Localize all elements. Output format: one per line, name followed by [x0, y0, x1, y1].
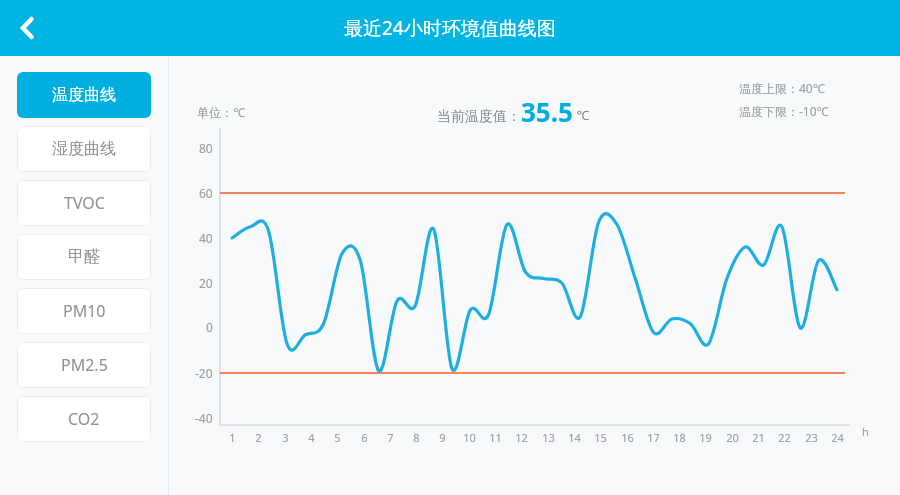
- staticText: 温度曲线: [52, 85, 116, 105]
- staticText: 12: [515, 430, 528, 445]
- staticText: 35.5: [521, 94, 573, 129]
- staticText: PM2.5: [61, 354, 108, 376]
- button[interactable]: TVOC: [17, 180, 151, 226]
- staticText: 最近24小时环境值曲线图: [344, 15, 556, 41]
- staticText: -20: [195, 365, 213, 381]
- staticText: 21: [752, 430, 765, 445]
- button[interactable]: PM10: [17, 288, 151, 334]
- button[interactable]: CO2: [17, 396, 151, 442]
- staticText: 5: [334, 430, 341, 445]
- staticText: 19: [699, 430, 712, 445]
- staticText: 20: [199, 275, 213, 291]
- staticText: 13: [542, 430, 555, 445]
- staticText: 10: [463, 430, 476, 445]
- staticText: CO2: [68, 408, 100, 430]
- staticText: 3: [282, 430, 289, 445]
- button[interactable]: PM2.5: [17, 342, 151, 388]
- staticText: 17: [647, 430, 660, 445]
- staticText: ℃: [573, 106, 590, 124]
- staticText: TVOC: [64, 192, 105, 214]
- staticText: 18: [673, 430, 686, 445]
- staticText: 9: [439, 430, 446, 445]
- staticText: 16: [621, 430, 634, 445]
- staticText: 23: [805, 430, 818, 445]
- staticText: 4: [308, 430, 315, 445]
- staticText: 14: [568, 430, 581, 445]
- staticText: 湿度曲线: [52, 139, 116, 159]
- staticText: 40: [199, 230, 213, 246]
- staticText: 温度上限：40℃: [739, 80, 825, 96]
- staticText: -40: [195, 410, 213, 426]
- staticText: 11: [489, 430, 502, 445]
- staticText: 甲醛: [68, 247, 100, 267]
- staticText: 单位：℃: [197, 104, 245, 120]
- button[interactable]: 甲醛: [17, 234, 151, 280]
- staticText: 80: [199, 140, 213, 156]
- button[interactable]: Back: [0, 0, 56, 56]
- button[interactable]: 湿度曲线: [17, 126, 151, 172]
- staticText: PM10: [63, 300, 106, 322]
- staticText: h: [862, 424, 869, 439]
- staticText: 2: [255, 430, 262, 445]
- staticText: 1: [229, 430, 236, 445]
- staticText: 60: [199, 185, 213, 201]
- staticText: 当前温度值：: [437, 108, 521, 126]
- staticText: 8: [413, 430, 420, 445]
- staticText: 22: [778, 430, 791, 445]
- staticText: 6: [361, 430, 368, 445]
- staticText: 24: [831, 430, 844, 445]
- button[interactable]: 温度曲线: [17, 72, 151, 118]
- staticText: 0: [206, 319, 213, 335]
- staticText: 20: [726, 430, 739, 445]
- staticText: 温度下限：-10℃: [739, 103, 829, 119]
- staticText: 15: [594, 430, 607, 445]
- staticText: 7: [387, 430, 394, 445]
